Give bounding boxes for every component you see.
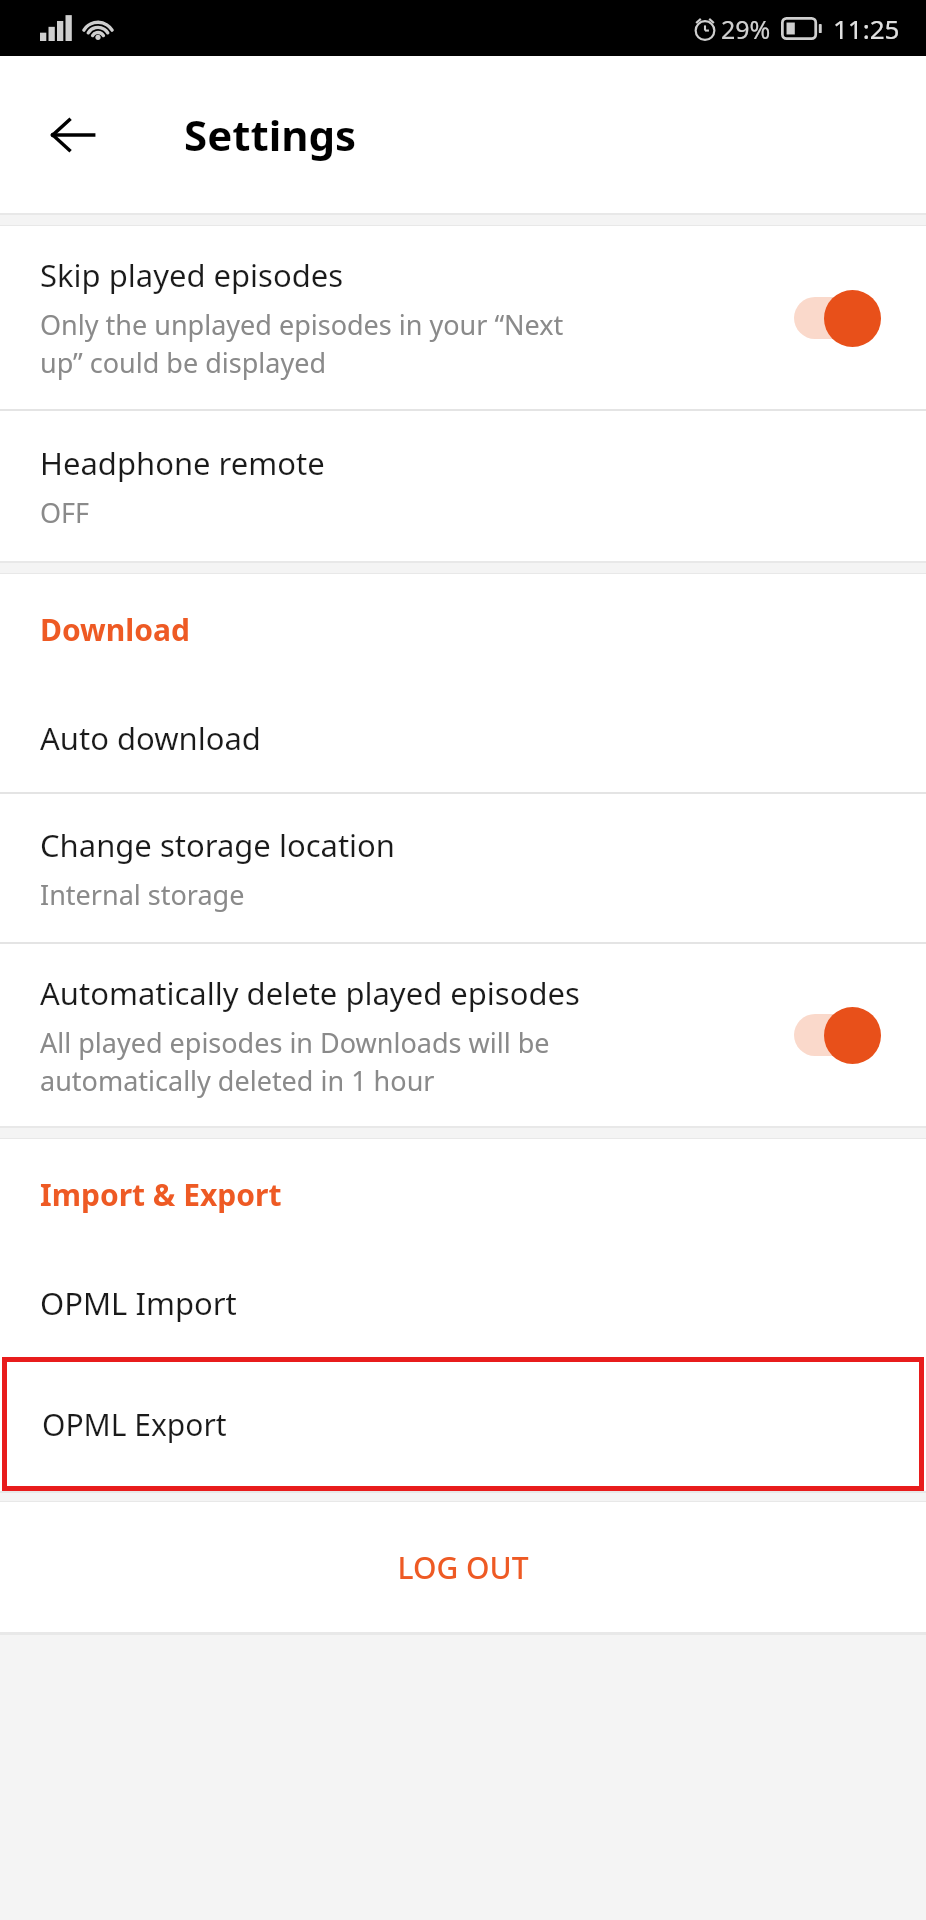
staticText: Change storage location <box>40 824 396 866</box>
button[interactable]: Change storage location <box>0 794 926 942</box>
button[interactable]: Headphone remote <box>0 411 926 561</box>
staticText: LOG OUT <box>397 1547 529 1588</box>
staticText: OFF <box>40 494 90 531</box>
button[interactable]: Auto download <box>0 684 926 792</box>
staticText: Internal storage <box>40 876 245 913</box>
button[interactable]: Back <box>30 92 116 178</box>
button[interactable]: Toggle <box>788 1003 892 1067</box>
button[interactable]: Toggle <box>788 286 892 350</box>
staticText: Only the unplayed episodes in your “Next… <box>40 306 564 381</box>
staticText: OPML Import <box>40 1282 237 1324</box>
staticText: Automatically delete played episodes <box>40 972 580 1014</box>
staticText: OPML Export <box>42 1404 227 1445</box>
button[interactable]: LOG OUT <box>0 1502 926 1632</box>
staticText: Headphone remote <box>40 442 325 484</box>
staticText: Import & Export <box>40 1174 282 1215</box>
button[interactable]: Automatically delete played episodes <box>0 944 926 1126</box>
staticText: Auto download <box>40 717 261 759</box>
staticText: 11:25 <box>833 11 900 46</box>
staticText: Skip played episodes <box>40 254 344 296</box>
button[interactable]: OPML Export <box>2 1357 924 1491</box>
staticText: 29% <box>721 12 771 46</box>
staticText: All played episodes in Downloads will be… <box>40 1024 550 1099</box>
staticText: Settings <box>184 106 357 163</box>
button[interactable]: Skip played episodes <box>0 226 926 409</box>
button[interactable]: OPML Import <box>0 1249 926 1357</box>
staticText: Download <box>40 609 190 650</box>
